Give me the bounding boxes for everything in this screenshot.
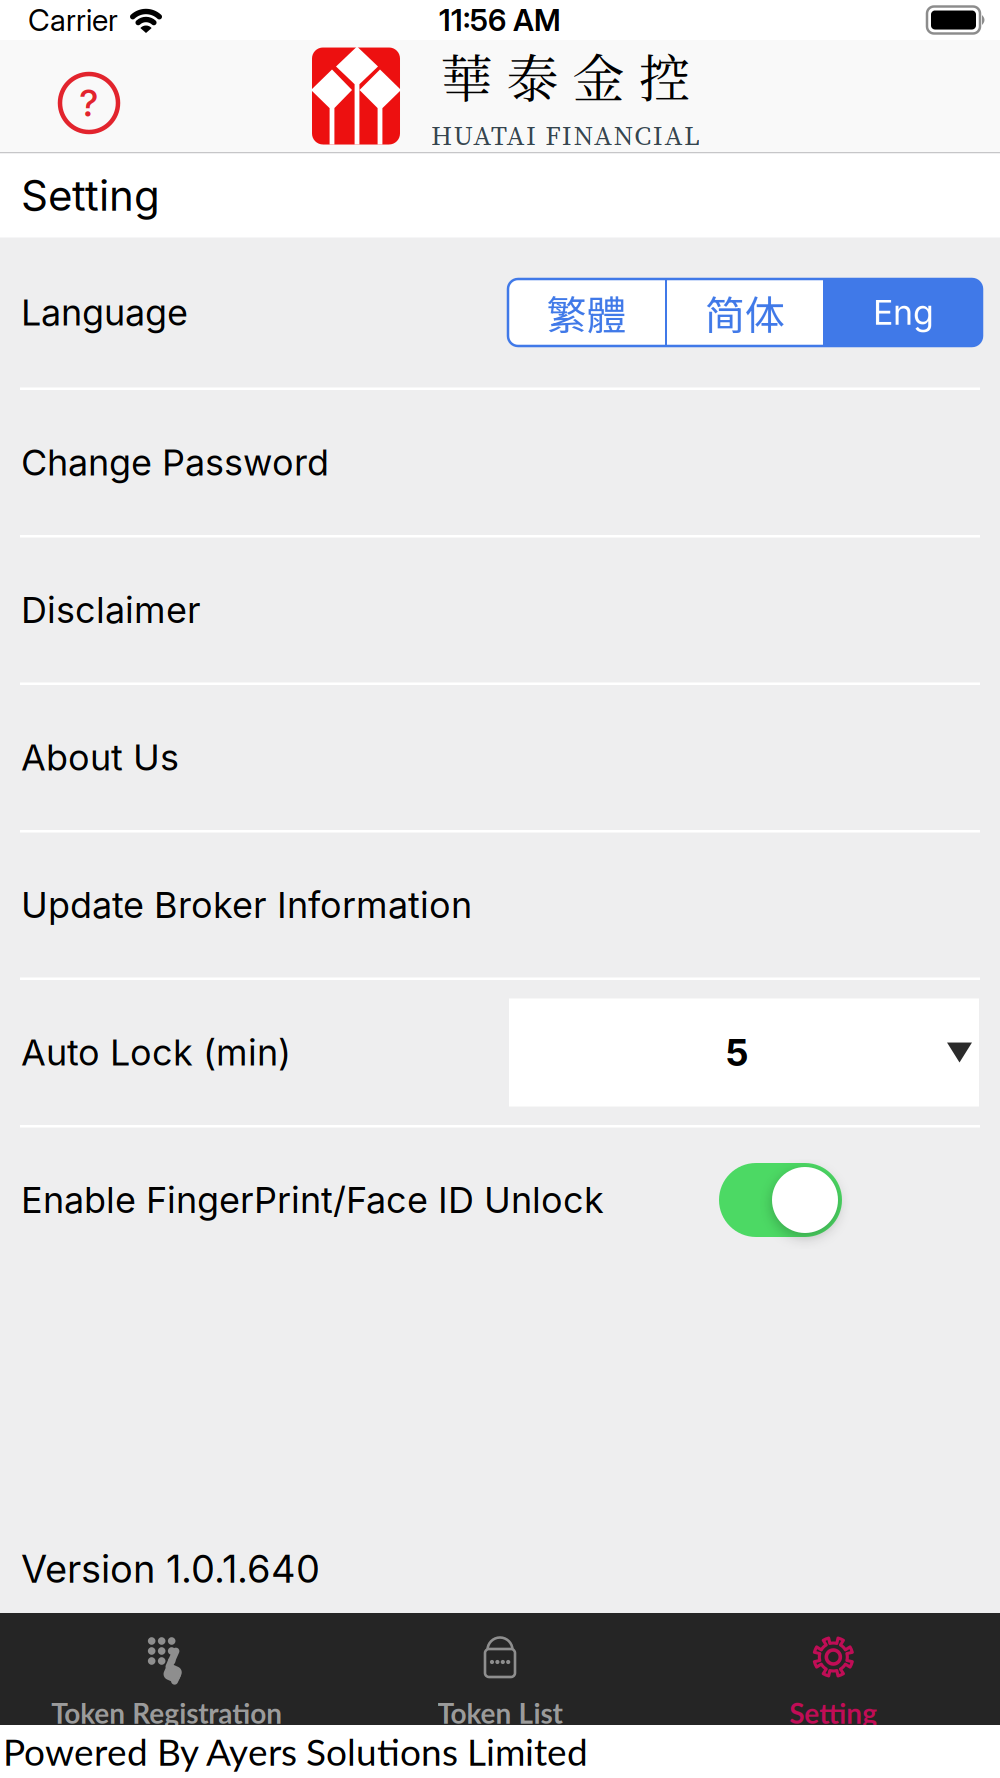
staticText: Token Registration	[51, 1696, 282, 1730]
staticText: Version 1.0.1.640	[21, 1546, 320, 1592]
staticText: 華	[440, 38, 492, 112]
staticText: 11:56 AM	[439, 2, 561, 38]
button[interactable]: Disclaimer	[0, 537, 1000, 682]
staticText: Token List	[437, 1696, 562, 1730]
button[interactable]: Update Broker Information	[0, 832, 1000, 977]
staticText: 控	[638, 38, 690, 112]
staticText: Auto Lock (min)	[21, 1031, 291, 1074]
staticText: About Us	[21, 736, 179, 779]
button[interactable]: Auto Lock minutes	[509, 998, 979, 1106]
staticText: Disclaimer	[21, 588, 201, 632]
staticText: 泰	[506, 38, 558, 112]
button[interactable]: Token Registration	[0, 1613, 333, 1725]
staticText: Setting	[789, 1696, 877, 1730]
button[interactable]: About Us	[0, 685, 1000, 830]
staticText: 繁體	[546, 283, 626, 341]
staticText: Carrier	[28, 2, 118, 38]
staticText: ?	[79, 81, 99, 125]
button[interactable]: Setting	[667, 1613, 1000, 1725]
button[interactable]: Eng	[825, 279, 982, 346]
staticText: Eng	[873, 292, 934, 333]
staticText: Setting	[21, 170, 160, 221]
staticText: Enable FingerPrint/Face ID Unlock	[21, 1178, 604, 1222]
button[interactable]: Help	[58, 72, 120, 134]
staticText: 5	[725, 1030, 749, 1075]
button[interactable]: Token List	[333, 1613, 667, 1725]
button[interactable]: 繁體	[508, 279, 665, 346]
button[interactable]: Enable FingerPrint/Face ID Unlock	[719, 1163, 842, 1237]
staticText: Change Password	[21, 441, 329, 484]
staticText: HUATAI FINANCIAL	[431, 116, 700, 154]
staticText: Language	[21, 291, 188, 334]
staticText: Update Broker Information	[21, 883, 472, 927]
button[interactable]: 简体	[667, 279, 823, 346]
staticText: 金	[572, 38, 624, 112]
staticText: 简体	[705, 283, 785, 341]
staticText: Powered By Ayers Solutions Limited	[3, 1729, 588, 1774]
button[interactable]: Change Password	[0, 390, 1000, 535]
